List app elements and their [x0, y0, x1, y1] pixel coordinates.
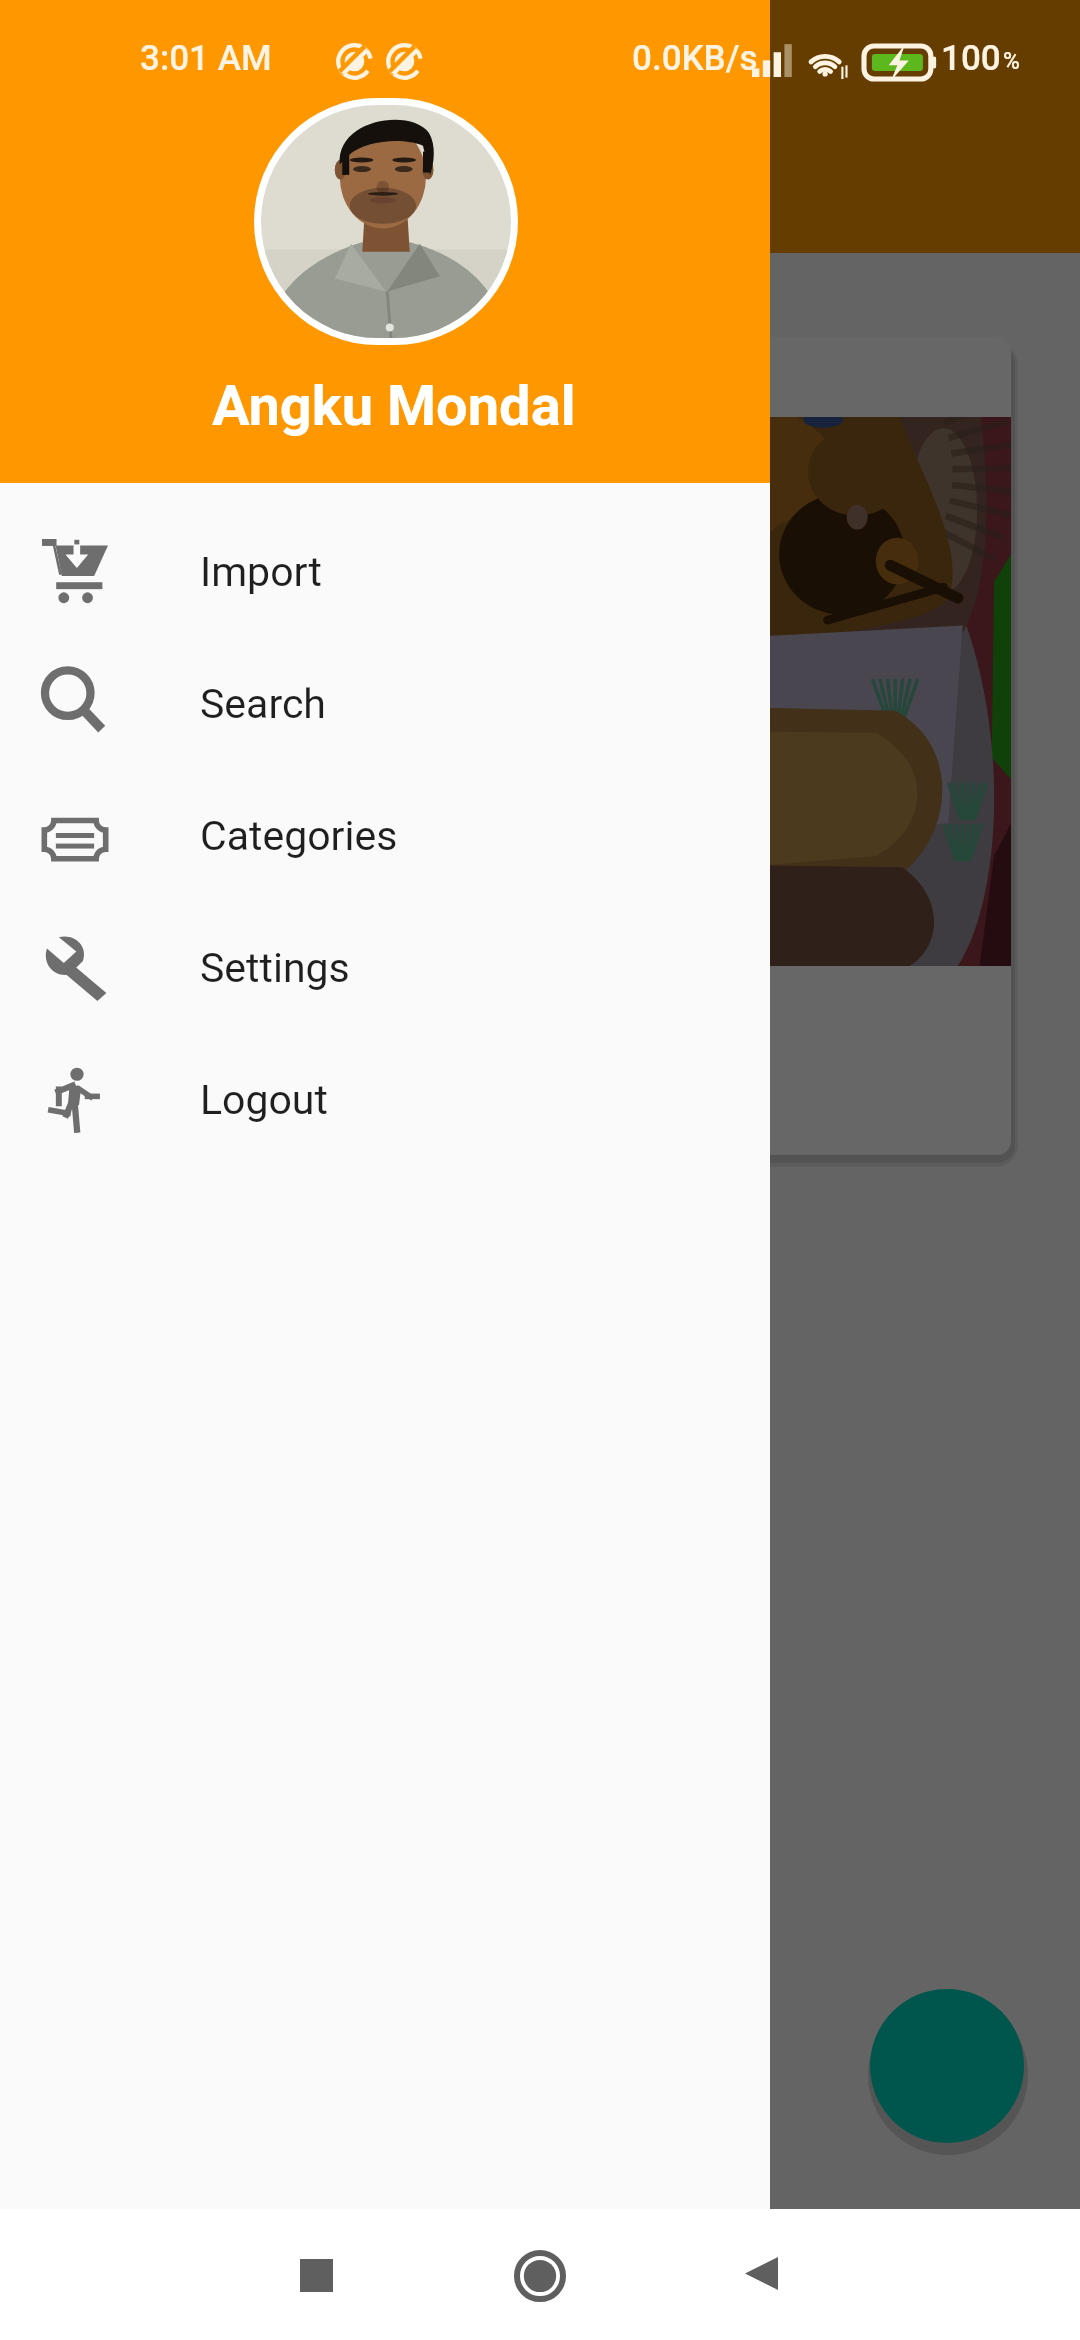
button[interactable]: Settings	[0, 902, 770, 1034]
staticText: Categories	[200, 812, 398, 860]
button[interactable]	[64, 337, 1011, 1155]
button[interactable]: Add	[870, 1989, 1024, 2143]
button[interactable]: Categories	[0, 770, 770, 902]
button[interactable]: Home	[514, 2250, 566, 2302]
staticText: Angku Mondal	[212, 373, 576, 439]
staticText: 100	[941, 38, 1001, 79]
staticText: 0.0KB/s	[632, 38, 758, 79]
button[interactable]: Search	[0, 638, 770, 770]
staticText: 3:01 AM	[140, 38, 272, 79]
staticText: Search	[200, 680, 326, 728]
staticText: Logout	[200, 1076, 328, 1124]
staticText: %	[1003, 48, 1020, 75]
staticText: Settings	[200, 944, 350, 992]
button[interactable]: Back	[745, 2257, 778, 2290]
button[interactable]: Logout	[0, 1034, 770, 1166]
staticText: Import	[200, 548, 322, 596]
button[interactable]: Import	[0, 506, 770, 638]
